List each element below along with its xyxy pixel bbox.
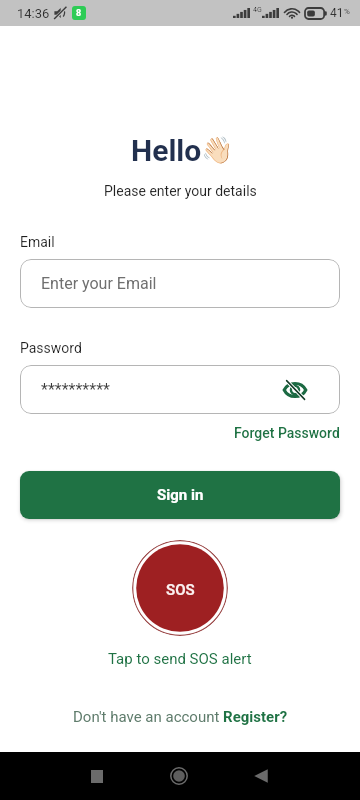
button[interactable]: Sign in bbox=[20, 471, 340, 519]
staticText: 👋🏻 bbox=[201, 135, 234, 165]
staticText: 4G bbox=[253, 6, 262, 14]
staticText: % bbox=[344, 7, 350, 16]
staticText: Enter your Email bbox=[41, 274, 157, 293]
button[interactable]: Send SOS alert bbox=[132, 540, 228, 636]
button[interactable]: Recent apps bbox=[75, 754, 119, 798]
staticText: 14:36 bbox=[17, 6, 50, 21]
button[interactable]: Back bbox=[239, 754, 283, 798]
button[interactable]: Don't have an account Register? bbox=[67, 704, 294, 730]
staticText: Hello bbox=[131, 133, 202, 168]
staticText: Password bbox=[20, 340, 82, 356]
staticText: 41 bbox=[330, 6, 344, 20]
button[interactable]: Show password bbox=[280, 375, 310, 405]
button[interactable]: Forget Password bbox=[234, 425, 340, 441]
button[interactable]: ********** bbox=[20, 365, 340, 414]
staticText: Please enter your details bbox=[104, 183, 257, 199]
button[interactable]: Enter your Email bbox=[20, 259, 340, 308]
staticText: ********** bbox=[41, 380, 110, 399]
staticText: Email bbox=[20, 234, 55, 250]
staticText: 8 bbox=[76, 8, 82, 19]
staticText: Tap to send SOS alert bbox=[108, 650, 252, 668]
staticText: Sign in bbox=[157, 486, 204, 504]
staticText: SOS bbox=[166, 581, 195, 599]
staticText: Don't have an account Register? bbox=[73, 708, 288, 726]
button[interactable]: Home bbox=[157, 754, 201, 798]
staticText: Forget Password bbox=[234, 425, 340, 441]
